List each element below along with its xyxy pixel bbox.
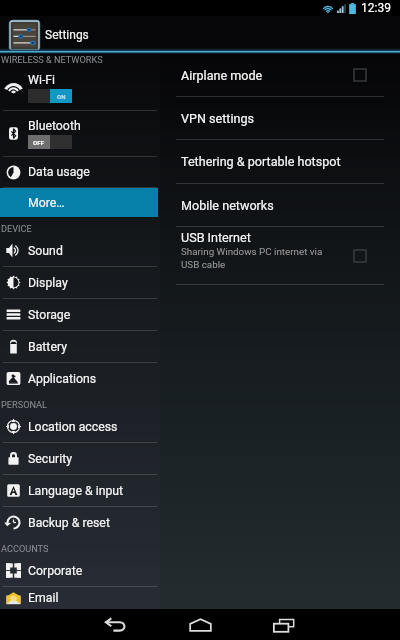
button[interactable]: Wi-Fi <box>0 66 160 110</box>
staticText: Email <box>28 591 59 605</box>
staticText: Tethering & portable hotspot <box>181 154 341 169</box>
button[interactable]: Tethering & portable hotspot <box>160 140 400 183</box>
button[interactable]: Corporate <box>0 555 160 586</box>
staticText: Sound <box>28 244 63 258</box>
button[interactable]: Settings <box>10 16 89 54</box>
button[interactable]: Mobile networks <box>160 184 400 226</box>
button[interactable]: Backup & reset <box>0 507 160 538</box>
button[interactable]: Off <box>28 135 72 149</box>
button[interactable]: Sound <box>0 235 160 266</box>
button[interactable]: USB Internet checkbox <box>349 245 371 267</box>
staticText: Language & input <box>28 484 124 498</box>
button[interactable]: On <box>28 89 72 103</box>
button[interactable]: Email <box>0 587 160 609</box>
staticText: ACCOUNTS <box>1 543 49 554</box>
staticText: 12:39 <box>361 1 391 15</box>
staticText: USB Internet <box>181 230 251 245</box>
button[interactable]: Applications <box>0 363 160 394</box>
button[interactable]: Language & input <box>0 475 160 506</box>
button[interactable]: Data usage <box>0 157 160 187</box>
button[interactable]: VPN settings <box>160 97 400 139</box>
staticText: Corporate <box>28 564 83 578</box>
button[interactable]: Airplane mode <box>160 54 400 96</box>
button[interactable]: Storage <box>0 299 160 330</box>
button[interactable]: Security <box>0 443 160 474</box>
staticText: Wi-Fi <box>28 73 56 87</box>
staticText: Airplane mode <box>181 68 263 83</box>
staticText: Backup & reset <box>28 516 110 530</box>
staticText: Settings <box>45 28 89 42</box>
staticText: Sharing Windows PC internet via USB cabl… <box>181 246 323 270</box>
staticText: Battery <box>28 340 68 354</box>
staticText: More… <box>28 196 65 210</box>
button[interactable]: Back <box>100 610 130 640</box>
button[interactable]: Location access <box>0 411 160 442</box>
staticText: Display <box>28 276 68 290</box>
staticText: Bluetooth <box>28 119 81 133</box>
staticText: Mobile networks <box>181 198 274 213</box>
staticText: WIRELESS & NETWORKS <box>1 54 103 65</box>
button[interactable]: Recent apps <box>269 610 299 640</box>
staticText: OFF <box>33 139 45 146</box>
button[interactable]: Battery <box>0 331 160 362</box>
button[interactable]: Bluetooth <box>0 111 160 156</box>
staticText: DEVICE <box>1 223 32 234</box>
staticText: Storage <box>28 308 71 322</box>
button[interactable]: USB Internet <box>160 227 400 284</box>
button[interactable]: Airplane mode checkbox <box>349 64 371 86</box>
staticText: VPN settings <box>181 111 255 126</box>
staticText: Location access <box>28 420 118 434</box>
button[interactable]: Display <box>0 267 160 298</box>
staticText: Security <box>28 452 73 466</box>
staticText: ON <box>57 93 66 100</box>
button[interactable]: More… <box>0 188 158 217</box>
staticText: PERSONAL <box>1 399 48 410</box>
staticText: Data usage <box>28 165 90 179</box>
button[interactable]: Home <box>185 610 215 640</box>
staticText: Applications <box>28 372 97 386</box>
